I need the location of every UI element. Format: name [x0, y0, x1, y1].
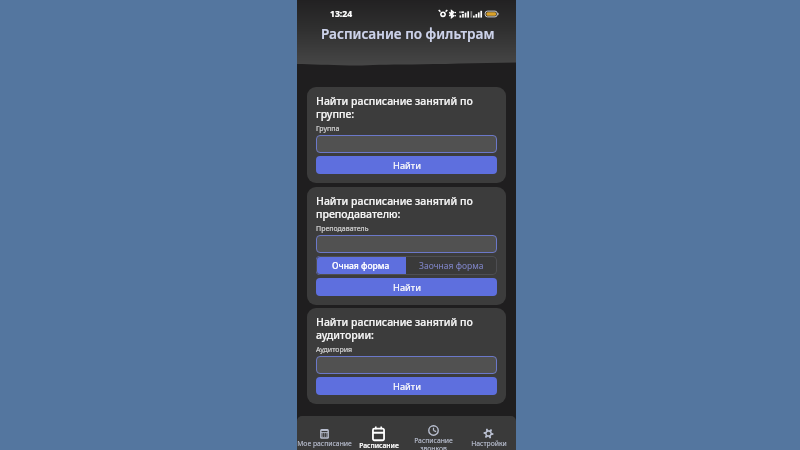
button[interactable]: Очная форма — [316, 256, 406, 275]
staticText: Найти — [393, 281, 421, 294]
staticText: Настройки — [471, 439, 507, 448]
staticText: Аудитория — [316, 345, 353, 355]
other: Мое расписание — [319, 428, 330, 439]
staticText: 13:24 — [330, 8, 353, 20]
staticText: Преподаватель — [316, 224, 369, 234]
staticText: Заочная форма — [419, 260, 484, 272]
button[interactable]: Мое расписание — [297, 425, 351, 450]
staticText: Найти расписание занятий по преподавател… — [316, 194, 497, 221]
staticText: Расписание звонков — [414, 436, 453, 450]
staticText: Мое расписание — [297, 439, 352, 448]
other: Расписание — [371, 426, 386, 441]
other: Расписание звонков — [428, 425, 439, 436]
button[interactable]: Text input — [316, 235, 497, 253]
staticText: Расписание — [359, 441, 399, 450]
other: Настройки — [483, 428, 494, 439]
button[interactable]: Расписание — [351, 425, 406, 450]
button[interactable]: Найти — [316, 156, 497, 174]
staticText: Найти расписание занятий по аудитории: — [316, 315, 497, 342]
staticText: Очная форма — [332, 260, 390, 272]
button[interactable]: Заочная форма — [406, 256, 497, 275]
button[interactable]: Найти — [316, 278, 497, 296]
other: Status icons — [440, 10, 498, 18]
staticText: Группа — [316, 124, 340, 134]
staticText: Найти — [393, 159, 421, 172]
button[interactable]: Text input — [316, 356, 497, 374]
button[interactable]: Настройки — [461, 425, 516, 450]
button[interactable]: Text input — [316, 135, 497, 153]
staticText: Найти расписание занятий по группе: — [316, 94, 497, 121]
staticText: Расписание по фильтрам — [321, 24, 495, 43]
staticText: Найти — [393, 380, 421, 393]
button[interactable]: Найти — [316, 377, 497, 395]
button[interactable]: Расписание звонков — [406, 425, 461, 450]
